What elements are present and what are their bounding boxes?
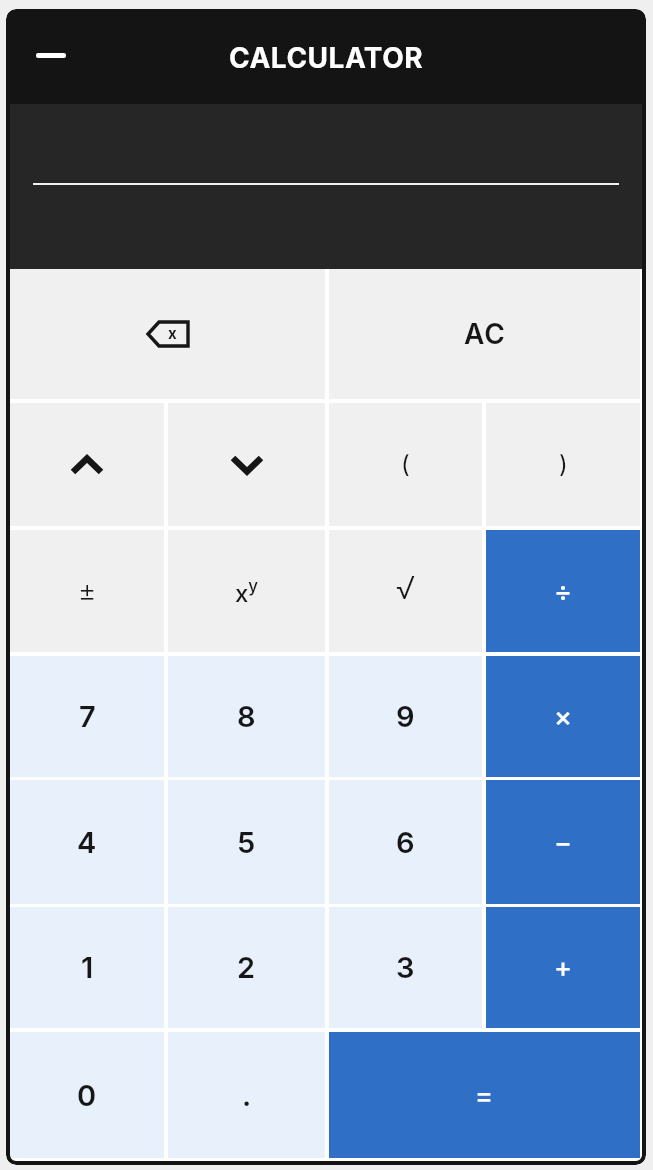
button[interactable]: ± — [10, 530, 164, 652]
button[interactable]: − — [486, 780, 640, 904]
button[interactable]: 2 — [168, 907, 325, 1028]
staticText: 4 — [77, 825, 97, 860]
staticText: 8 — [237, 699, 256, 734]
button[interactable]: 4 — [10, 780, 164, 904]
staticText: + — [554, 951, 573, 984]
staticText: 2 — [237, 950, 256, 985]
staticText: x — [168, 324, 177, 342]
staticText: = — [475, 1079, 494, 1112]
button[interactable]: 5 — [168, 780, 325, 904]
button[interactable]: 7 — [10, 656, 164, 777]
staticText: √ — [396, 569, 416, 607]
button[interactable]: = — [329, 1032, 640, 1158]
button[interactable]: AC — [329, 269, 640, 399]
button[interactable]: 3 — [329, 907, 482, 1028]
button[interactable]: 0 — [10, 1032, 164, 1158]
staticText: × — [554, 700, 573, 733]
staticText: 5 — [237, 825, 256, 860]
staticText: 3 — [396, 950, 415, 985]
button[interactable]: 6 — [329, 780, 482, 904]
staticText: ± — [78, 574, 97, 608]
staticText: 7 — [79, 699, 96, 734]
button[interactable]: 8 — [168, 656, 325, 777]
staticText: CALCULATOR — [229, 41, 424, 75]
button[interactable]: 1 — [10, 907, 164, 1028]
button[interactable] — [168, 403, 325, 526]
button[interactable]: ) — [486, 403, 640, 526]
button[interactable]: 9 — [329, 656, 482, 777]
button[interactable] — [10, 403, 164, 526]
button[interactable]: ( — [329, 403, 482, 526]
button[interactable]: √ — [329, 530, 482, 652]
button[interactable] — [36, 53, 66, 58]
button[interactable]: + — [486, 907, 640, 1028]
staticText: xy — [235, 576, 259, 607]
button[interactable]: x — [10, 269, 325, 399]
staticText: AC — [464, 317, 506, 351]
button[interactable]: xy — [168, 530, 325, 652]
button[interactable]: . — [168, 1032, 325, 1158]
staticText: ( — [401, 450, 410, 479]
staticText: 1 — [81, 950, 94, 985]
staticText: 6 — [396, 825, 415, 860]
staticText: − — [554, 826, 573, 859]
staticText: . — [242, 1078, 252, 1113]
button[interactable]: ÷ — [486, 530, 640, 652]
staticText: 0 — [77, 1078, 97, 1113]
button[interactable]: × — [486, 656, 640, 777]
staticText: ÷ — [554, 575, 573, 608]
staticText: ) — [559, 450, 568, 479]
staticText: 9 — [396, 699, 415, 734]
